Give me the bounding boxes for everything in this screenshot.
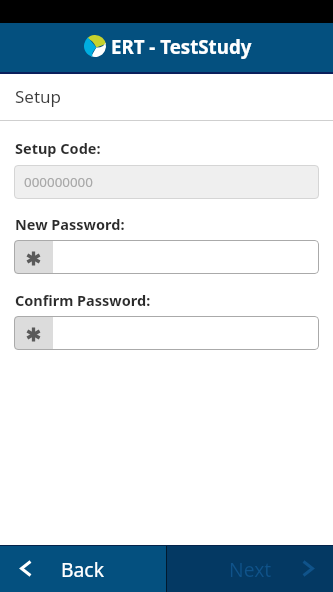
button[interactable] [14,316,319,350]
staticText: Next [229,556,272,582]
staticText: Setup [15,85,62,108]
staticText: ERT - TestStudy [111,34,252,59]
staticText: New Password: [15,214,125,234]
staticText: Confirm Password: [15,290,151,310]
button[interactable]: 000000000 [14,165,319,199]
button[interactable] [14,240,319,274]
staticText: Back [61,556,104,582]
staticText: Setup Code: [15,138,101,158]
button[interactable]: Back [0,545,166,592]
button[interactable]: Next [167,545,333,592]
staticText: 000000000 [24,173,93,191]
